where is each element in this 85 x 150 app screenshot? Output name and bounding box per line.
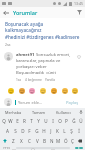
staticText: Merhaba — [5, 110, 22, 115]
staticText: S — [14, 128, 17, 134]
button[interactable]: Yorum ekle... — [15, 100, 64, 105]
staticText: D — [21, 128, 25, 134]
button[interactable]: U — [42, 117, 49, 125]
staticText: O — [58, 118, 62, 124]
button[interactable]: İ — [75, 127, 82, 135]
staticText: Ş — [70, 128, 73, 134]
staticText: T — [30, 118, 33, 124]
staticText: Boşuaolmadık cünit — [16, 70, 56, 76]
button[interactable]: T — [28, 117, 35, 125]
staticText: ahmet91 — [16, 52, 36, 58]
staticText: Kullanıcı — [56, 110, 71, 115]
button[interactable]: Voice input — [76, 108, 85, 116]
button[interactable]: W — [7, 117, 14, 125]
button[interactable]: Emoji — [39, 87, 46, 94]
staticText: Tamam — [32, 110, 46, 115]
button[interactable]: L — [61, 127, 68, 135]
button[interactable]: Shift — [1, 137, 9, 145]
staticText: Z — [12, 138, 15, 144]
staticText: C — [28, 138, 31, 144]
staticText: Yanıtla — [45, 78, 55, 82]
button[interactable]: Ç — [69, 137, 76, 145]
button[interactable]: Q — [1, 117, 7, 125]
staticText: Yorumlar — [13, 9, 38, 16]
staticText: #hedinizi #tizdirgenes #kadinsere — [5, 34, 80, 40]
button[interactable]: Emoji — [7, 87, 14, 94]
button[interactable]: O — [56, 117, 63, 125]
button[interactable]: R — [21, 117, 28, 125]
button[interactable]: D — [19, 127, 26, 135]
staticText: R — [23, 118, 26, 124]
button[interactable]: H — [40, 127, 47, 135]
staticText: Ğ — [72, 118, 76, 124]
button[interactable]: Emoji — [61, 87, 68, 94]
staticText: ?123 — [3, 147, 10, 149]
button[interactable]: Kullanıcı — [51, 108, 76, 116]
button[interactable]: K — [54, 127, 61, 135]
staticText: H — [42, 128, 46, 134]
staticText: N — [50, 138, 54, 144]
staticText: Ü — [79, 118, 83, 124]
button[interactable]: Enter — [75, 147, 83, 149]
button[interactable]: A — [3, 127, 11, 135]
staticText: I — [52, 118, 54, 124]
button[interactable]: F — [26, 127, 33, 135]
staticText: M — [56, 138, 61, 144]
button[interactable]: Merhaba — [0, 108, 26, 116]
button[interactable]: Emoji — [18, 87, 25, 94]
staticText: G — [35, 128, 39, 134]
staticText: J — [50, 128, 52, 134]
staticText: K — [56, 128, 59, 134]
button[interactable]: ahmet91 — [0, 49, 85, 85]
staticText: A — [6, 128, 9, 134]
staticText: 13:45 — [74, 1, 83, 6]
staticText: W — [8, 118, 13, 124]
staticText: Yorum ekle... — [18, 100, 43, 105]
button[interactable]: Ö — [62, 137, 69, 145]
button[interactable]: Back — [0, 7, 11, 18]
staticText: Y — [37, 118, 40, 124]
button[interactable]: S — [11, 127, 19, 135]
button[interactable]: Tamam — [26, 108, 51, 116]
button[interactable]: Emoji — [28, 87, 35, 94]
button[interactable]: J — [47, 127, 54, 135]
button[interactable]: Emoji — [71, 87, 78, 94]
button[interactable]: Z — [9, 137, 17, 145]
button[interactable]: Paylaş — [64, 99, 81, 106]
button[interactable]: Filter — [74, 7, 85, 18]
button[interactable]: C — [25, 137, 33, 145]
button[interactable]: Like — [76, 54, 81, 59]
button[interactable]: I — [49, 117, 56, 125]
button[interactable]: G — [33, 127, 40, 135]
button[interactable]: Backspace — [76, 137, 84, 145]
button[interactable]: ?123 — [2, 147, 11, 149]
button[interactable]: Ü — [77, 117, 84, 125]
staticText: Q — [2, 118, 6, 124]
staticText: Boşunacak ayağa kalkmayacağınız — [5, 21, 80, 33]
button[interactable]: V — [33, 137, 41, 145]
staticText: F — [28, 128, 31, 134]
button[interactable]: E — [14, 117, 21, 125]
button[interactable]: Y — [35, 117, 42, 125]
button[interactable]: Emoji — [50, 87, 57, 94]
staticText: X — [20, 138, 23, 144]
button[interactable]: Ş — [68, 127, 75, 135]
button[interactable]: M — [55, 137, 62, 145]
staticText: L — [63, 128, 66, 134]
button[interactable]: N — [48, 137, 55, 145]
button[interactable]: Ğ — [70, 117, 77, 125]
staticText: Paylaş — [66, 100, 79, 105]
staticText: 1sa — [16, 78, 22, 82]
staticText: Sonsuzluk emcet, — [36, 52, 71, 58]
button[interactable]: B — [41, 137, 48, 145]
staticText: 2sa — [5, 42, 11, 47]
staticText: P — [65, 118, 68, 124]
button[interactable]: X — [17, 137, 25, 145]
button[interactable]: P — [63, 117, 70, 125]
staticText: V — [36, 138, 39, 144]
staticText: Ç — [71, 138, 74, 144]
